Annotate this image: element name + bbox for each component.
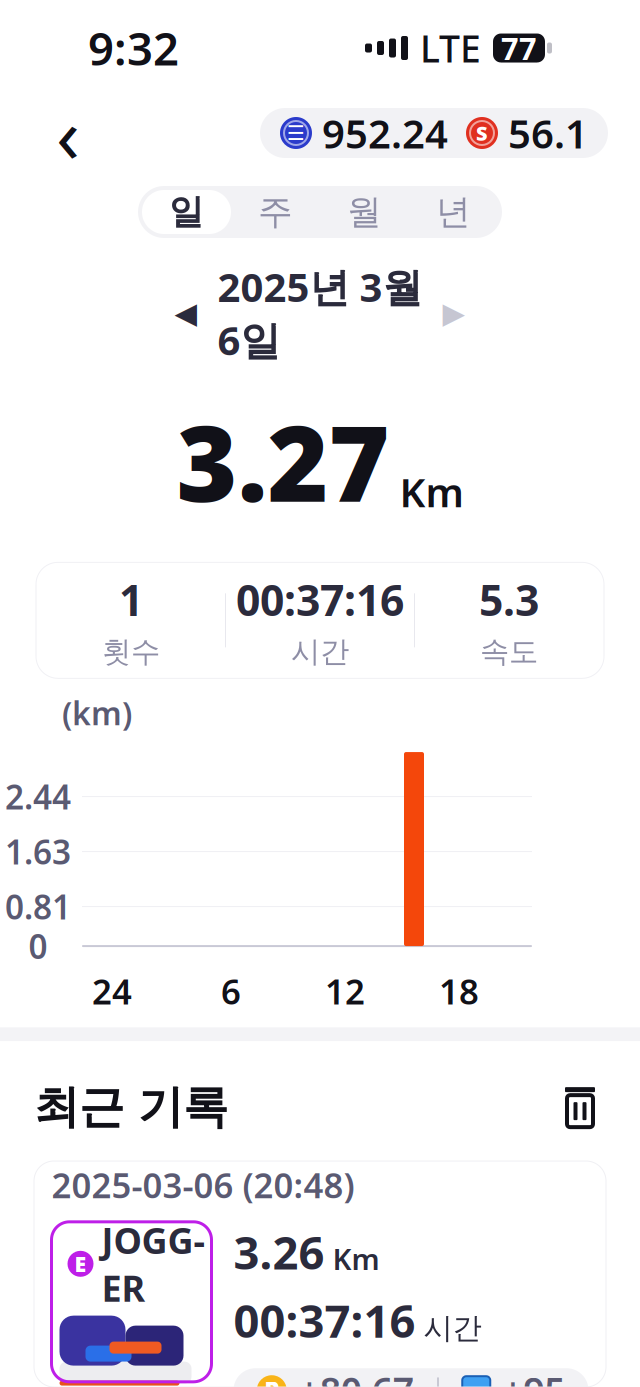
button[interactable]: 주 — [231, 190, 320, 234]
button[interactable]: ☰ — [260, 108, 608, 158]
staticText: 속도 — [480, 634, 538, 670]
staticText: 주 — [258, 191, 293, 233]
staticText: ◀ — [174, 296, 197, 330]
staticText: 56.1 — [508, 106, 588, 159]
staticText: 77 — [501, 28, 537, 68]
staticText: 9:32 — [88, 18, 179, 78]
staticText: 월 — [347, 191, 382, 233]
staticText: ‹ — [56, 82, 80, 184]
staticText: 1 — [119, 571, 143, 628]
button[interactable]: Back — [38, 103, 98, 163]
staticText: P — [264, 1374, 279, 1387]
staticText: 12 — [325, 968, 365, 1014]
staticText: 시간 — [423, 1310, 481, 1346]
staticText: 3.26 — [233, 1222, 324, 1282]
staticText: 1.63 — [5, 829, 71, 874]
staticText: +95 — [502, 1365, 565, 1387]
button[interactable]: 월 — [320, 190, 409, 234]
staticText: 952.24 — [322, 106, 448, 159]
staticText: E — [74, 1250, 86, 1278]
staticText: 2.44 — [5, 774, 71, 819]
button[interactable]: Previous day — [162, 291, 210, 335]
button[interactable]: 2025-03-06 (20:48) — [34, 1161, 606, 1387]
staticText: 5.3 — [479, 571, 539, 628]
staticText: ▶ — [442, 296, 465, 330]
button[interactable]: Delete records — [554, 1081, 606, 1133]
staticText: 0 — [28, 924, 47, 968]
staticText: 0.81 — [5, 884, 71, 929]
staticText: 24 — [92, 968, 132, 1014]
staticText: (km) — [62, 692, 132, 734]
staticText: 00:37:16 — [236, 571, 404, 628]
button[interactable]: 일 — [142, 190, 231, 234]
staticText: JOGGER — [101, 1216, 205, 1312]
button[interactable]: Next day — [430, 291, 478, 335]
staticText: 3.27 — [176, 392, 389, 530]
staticText: 18 — [439, 968, 479, 1014]
staticText: 년 — [436, 191, 471, 233]
staticText: S — [476, 120, 488, 146]
staticText: Km — [332, 1239, 379, 1278]
staticText: ☰ — [287, 122, 305, 144]
staticText: 일 — [169, 191, 204, 233]
staticText: LTE — [420, 23, 481, 73]
staticText: 횟수 — [102, 634, 160, 670]
staticText: Km — [399, 465, 463, 518]
staticText: 최근 기록 — [34, 1079, 228, 1135]
staticText: 시간 — [291, 634, 349, 670]
staticText: 2025-03-06 (20:48) — [51, 1162, 354, 1208]
staticText: 00:37:16 — [233, 1290, 415, 1350]
staticText: 2025년 3월 6일 — [217, 260, 422, 366]
staticText: +80.67 — [299, 1365, 414, 1387]
button[interactable]: 년 — [409, 190, 498, 234]
staticText: 6 — [221, 968, 241, 1014]
